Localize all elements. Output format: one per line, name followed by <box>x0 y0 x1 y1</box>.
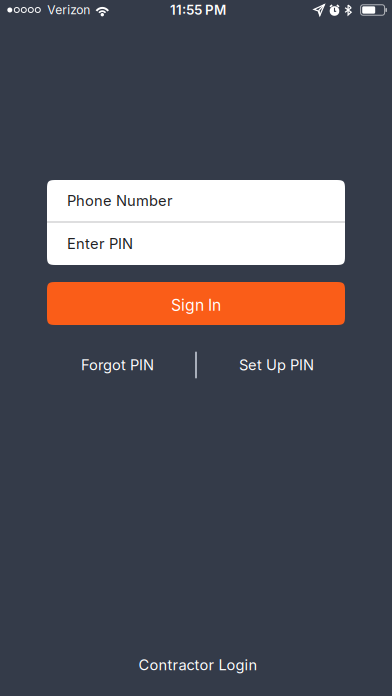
staticText: 11:55 PM <box>170 2 226 18</box>
staticText: Verizon <box>47 3 90 17</box>
staticText: Phone Number <box>67 192 173 210</box>
staticText: Sign In <box>171 295 221 314</box>
staticText: Contractor Login <box>138 656 257 674</box>
staticText: Set Up PIN <box>239 356 314 374</box>
staticText: Enter PIN <box>67 235 133 253</box>
button[interactable]: Set Up PIN <box>202 351 350 379</box>
button[interactable]: Phone Number <box>47 180 345 221</box>
button[interactable]: Forgot PIN <box>43 351 191 379</box>
staticText: Forgot PIN <box>81 356 154 374</box>
button[interactable]: Contractor Login <box>96 650 296 680</box>
button[interactable]: Sign In <box>47 282 345 325</box>
button[interactable]: Enter PIN <box>47 222 345 265</box>
